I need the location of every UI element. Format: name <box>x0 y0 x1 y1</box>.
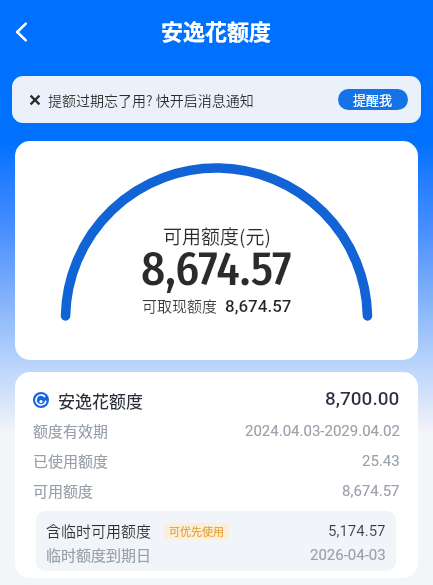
staticText: 25.43 <box>362 452 400 470</box>
staticText: 临时额度到期日 <box>46 544 152 566</box>
button[interactable]: 安逸花额度 <box>33 385 400 415</box>
staticText: 2026-04-03 <box>310 546 386 564</box>
button[interactable]: 提醒我 <box>338 89 408 110</box>
staticText: 安逸花额度 <box>58 388 143 413</box>
staticText: 可优先使用 <box>169 523 224 539</box>
staticText: 8,674.57 <box>342 482 400 500</box>
staticText: 8,674.57 <box>225 296 292 316</box>
button[interactable]: 可用额度 <box>33 476 400 506</box>
staticText: 含临时可用额度 <box>46 520 152 542</box>
staticText: 额度有效期 <box>33 420 109 442</box>
staticText: 提醒我 <box>353 90 393 109</box>
button[interactable]: 额度有效期 <box>33 416 400 446</box>
staticText: 安逸花额度 <box>161 14 272 46</box>
staticText: 2024.04.03-2029.04.02 <box>245 422 400 440</box>
button[interactable]: 临时额度到期日 <box>46 541 386 569</box>
staticText: 8,674.57 <box>141 241 292 295</box>
button[interactable]: 含临时可用额度 <box>46 517 386 545</box>
button[interactable]: Back <box>9 20 33 44</box>
button[interactable]: Close notification <box>12 76 421 123</box>
staticText: 5,174.57 <box>328 522 386 540</box>
staticText: 可用额度(元) <box>163 222 271 248</box>
button[interactable]: 已使用额度 <box>33 446 400 476</box>
staticText: 8,700.00 <box>325 387 400 409</box>
staticText: 提额过期忘了用? 快开启消息通知 <box>48 90 254 110</box>
button[interactable]: Close notification <box>23 88 47 112</box>
staticText: 已使用额度 <box>33 450 109 472</box>
staticText: 可取现额度 <box>142 295 218 317</box>
staticText: 可用额度 <box>33 480 94 502</box>
